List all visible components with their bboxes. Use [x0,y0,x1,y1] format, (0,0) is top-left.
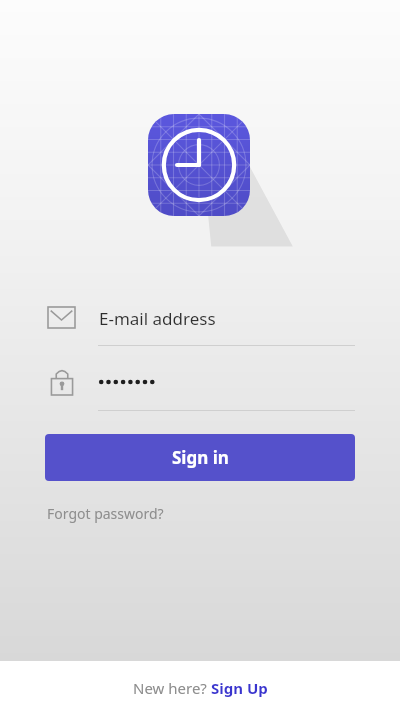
staticText: Sign Up [211,678,268,698]
other: Password [50,367,74,396]
other: E-mail [48,307,75,328]
staticText: Forgot password? [47,504,164,523]
button[interactable]: Sign Up [211,678,268,698]
button[interactable] [99,368,355,396]
button[interactable]: E-mail address [99,305,355,331]
staticText: Sign in [172,446,229,469]
staticText: E-mail address [99,307,216,330]
staticText: New here? [133,678,211,698]
button[interactable]: Sign in [45,434,355,481]
button[interactable]: Forgot password? [47,501,164,525]
